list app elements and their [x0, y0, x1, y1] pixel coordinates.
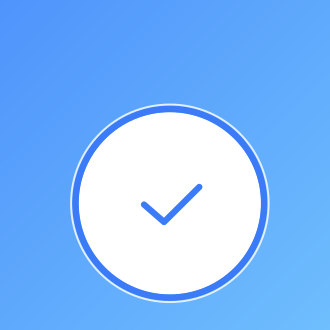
button[interactable]: Done [70, 104, 269, 303]
